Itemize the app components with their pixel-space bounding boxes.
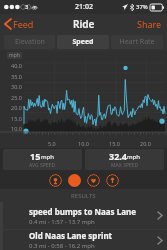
button[interactable]: Heart Rate [111, 35, 163, 49]
staticText: Old Naas Lane sprint [29, 230, 113, 241]
staticText: 3 [25, 3, 29, 11]
staticText: 10.0 [11, 125, 22, 132]
staticText: speed bumps to Naas Lane [29, 206, 136, 217]
staticText: Ride [73, 17, 95, 31]
staticText: 30.0 [11, 83, 22, 90]
staticText: MAX SPEED [111, 162, 139, 169]
button[interactable]: Elevation [4, 35, 55, 49]
button[interactable]: Power [106, 174, 119, 187]
staticText: 20.0 [140, 140, 151, 147]
staticText: 40.0 [11, 62, 22, 69]
button[interactable]: Share [132, 15, 167, 33]
staticText: 21:02 [75, 2, 93, 12]
button[interactable]: 15 [3, 149, 82, 170]
staticText: Heart Rate [119, 37, 155, 47]
button[interactable]: speed bumps to Naas Lane [0, 202, 167, 229]
staticText: mph [41, 153, 55, 161]
button[interactable]: Feed [3, 16, 36, 32]
staticText: RESULTS [71, 192, 96, 200]
staticText: mph [127, 153, 141, 161]
staticText: 20.0 [11, 104, 22, 111]
staticText: 25.0 [11, 94, 22, 101]
staticText: 35.0 [11, 73, 22, 80]
staticText: mph [9, 52, 20, 59]
staticText: 5.0 [48, 140, 56, 147]
button[interactable]: 32.4 [85, 149, 164, 170]
staticText: 32.4 [109, 150, 127, 162]
staticText: 10.0 [78, 140, 89, 147]
button[interactable]: Speed [68, 174, 81, 187]
staticText: 37% [136, 3, 148, 11]
staticText: 0.4 mi - 1:57 - 13.7 mph [29, 218, 95, 226]
staticText: Elevation [15, 37, 45, 47]
staticText: Speed [72, 37, 94, 47]
staticText: AVG SPEED [29, 162, 56, 169]
button[interactable]: Old Naas Lane sprint [0, 230, 167, 250]
staticText: 15.0 [11, 115, 22, 122]
staticText: 0.3 mi - 0:58 - 16.2 mph [29, 242, 95, 250]
staticText: 15 [30, 150, 41, 162]
button[interactable]: Trophy [49, 174, 62, 187]
staticText: 15.0 [109, 140, 120, 147]
button[interactable]: Speed [57, 35, 109, 49]
button[interactable]: Heart [87, 174, 100, 187]
staticText: Feed [13, 18, 34, 30]
